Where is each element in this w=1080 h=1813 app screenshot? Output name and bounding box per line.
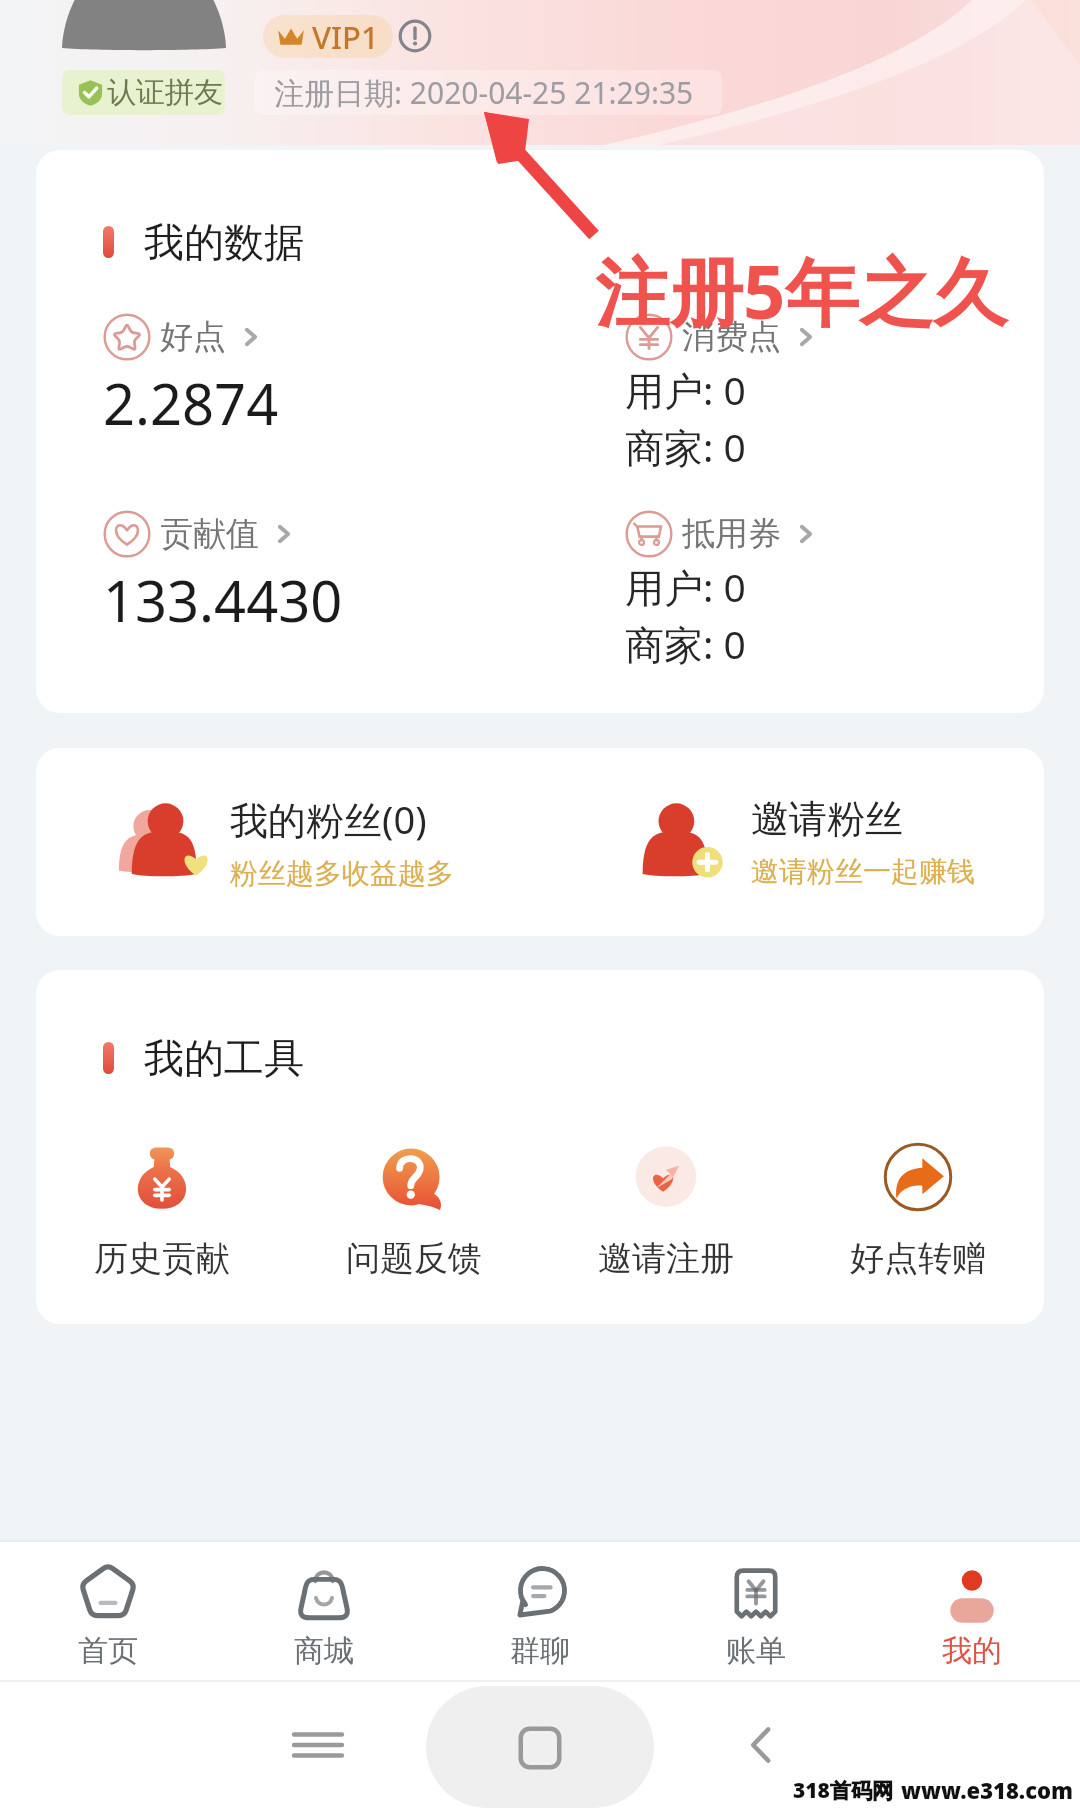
- button[interactable]: 账单: [648, 1562, 864, 1670]
- button[interactable]: 商城: [216, 1562, 432, 1670]
- staticText: 133.4430: [103, 562, 343, 638]
- button[interactable]: 我的粉丝(0): [36, 793, 540, 891]
- button[interactable]: 抵用券: [625, 510, 819, 558]
- other: Back: [736, 1719, 788, 1771]
- staticText: 注册5年之久: [595, 240, 1008, 341]
- staticText: 邀请粉丝一起赚钱: [751, 854, 975, 889]
- staticText: 问题反馈: [346, 1237, 482, 1280]
- button[interactable]: Info: [398, 19, 432, 53]
- button[interactable]: 首页: [0, 1562, 216, 1670]
- other: Home: [514, 1722, 566, 1774]
- button[interactable]: 邀请粉丝: [540, 795, 1044, 889]
- staticText: 历史贡献: [94, 1237, 230, 1280]
- staticText: 账单: [726, 1632, 786, 1670]
- button[interactable]: 我的: [864, 1562, 1080, 1670]
- staticText: www.e318.com: [901, 1775, 1074, 1805]
- staticText: 认证拼友: [107, 74, 223, 111]
- button[interactable]: 群聊: [432, 1562, 648, 1670]
- staticText: VIP1: [312, 16, 379, 58]
- staticText: 群聊: [510, 1632, 570, 1670]
- staticText: 我的工具: [144, 1033, 304, 1083]
- button[interactable]: 历史贡献: [36, 1141, 288, 1280]
- staticText: 318首码网: [793, 1776, 893, 1805]
- staticText: 好点: [160, 316, 226, 358]
- staticText: 抵用券: [682, 513, 781, 555]
- staticText: 我的数据: [144, 217, 304, 267]
- staticText: 我的粉丝(0): [230, 793, 427, 845]
- staticText: 邀请注册: [598, 1237, 734, 1280]
- button[interactable]: 好点转赠: [792, 1141, 1044, 1280]
- staticText: 注册日期: 2020-04-25 21:29:35: [274, 72, 694, 113]
- staticText: 用户: 0: [625, 560, 746, 613]
- button[interactable]: 消费点: [625, 313, 819, 361]
- staticText: 我的: [942, 1632, 1002, 1670]
- staticText: 首页: [78, 1632, 138, 1670]
- staticText: 好点转赠: [850, 1237, 986, 1280]
- staticText: 商家: 0: [625, 420, 746, 473]
- button[interactable]: VIP1: [263, 15, 393, 58]
- staticText: 商城: [294, 1632, 354, 1670]
- button[interactable]: 好点: [103, 313, 264, 361]
- staticText: 2.2874: [103, 365, 279, 441]
- button[interactable]: 问题反馈: [288, 1141, 540, 1280]
- staticText: 商家: 0: [625, 617, 746, 670]
- other: Recents: [292, 1719, 344, 1771]
- button[interactable]: 贡献值: [103, 510, 297, 558]
- button[interactable]: 邀请注册: [540, 1141, 792, 1280]
- staticText: 用户: 0: [625, 363, 746, 416]
- staticText: 消费点: [682, 316, 781, 358]
- staticText: 邀请粉丝: [751, 795, 903, 843]
- staticText: 贡献值: [160, 513, 259, 555]
- staticText: 粉丝越多收益越多: [230, 856, 454, 891]
